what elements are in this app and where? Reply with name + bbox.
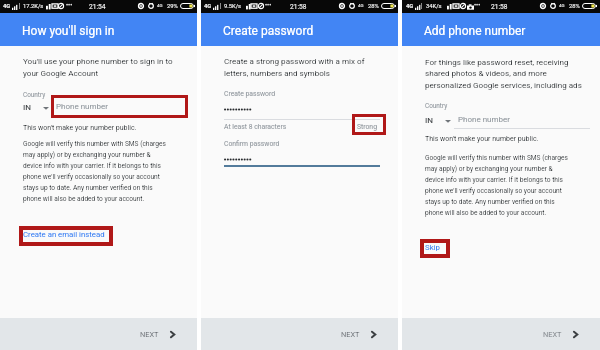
staticText: Phone number xyxy=(458,115,510,124)
staticText: ••• xyxy=(66,2,73,9)
staticText: This won't make your number public. xyxy=(23,124,137,132)
staticText: 4G xyxy=(559,3,565,8)
staticText: This won't make your number public. xyxy=(425,135,539,143)
staticText: NEXT xyxy=(140,330,159,339)
staticText: 28% xyxy=(368,3,379,10)
staticText: IN xyxy=(23,102,32,111)
staticText: At least 8 characters xyxy=(224,123,287,131)
button[interactable]: NEXT xyxy=(329,323,398,346)
staticText: 29% xyxy=(167,3,178,10)
staticText: ••• xyxy=(474,2,481,9)
staticText: How you'll sign in xyxy=(22,24,115,38)
staticText: 21:58 xyxy=(290,3,307,11)
staticText: Google will verify this number with SMS … xyxy=(425,154,568,216)
staticText: Country xyxy=(425,102,448,110)
staticText: 34K/s xyxy=(426,3,442,10)
staticText: 4G xyxy=(204,3,212,10)
staticText: Country xyxy=(23,91,46,99)
staticText: Confirm password xyxy=(224,140,280,148)
staticText: You'll use your phone number to sign in … xyxy=(23,56,173,78)
staticText: IN xyxy=(425,115,434,124)
staticText: NEXT xyxy=(543,330,562,339)
staticText: 4G xyxy=(406,3,414,10)
button[interactable]: NEXT xyxy=(128,323,197,346)
staticText: NEXT xyxy=(341,330,360,339)
button[interactable]: Create an email instead xyxy=(23,230,105,239)
staticText: 4G xyxy=(3,3,11,10)
staticText: Phone number xyxy=(56,102,108,111)
staticText: For things like password reset, receivin… xyxy=(425,57,582,90)
staticText: 28% xyxy=(569,3,580,10)
staticText: Create password xyxy=(223,24,314,38)
staticText: 21:54 xyxy=(89,3,106,11)
staticText: Create a strong password with a mix of l… xyxy=(224,56,365,78)
staticText: Strong xyxy=(357,123,377,131)
staticText: 9.5K/s xyxy=(224,3,242,10)
button[interactable]: NEXT xyxy=(531,323,600,346)
staticText: 21:58 xyxy=(491,3,508,11)
staticText: 4G xyxy=(157,3,163,8)
button[interactable]: Skip xyxy=(425,243,440,252)
staticText: Google will verify this number with SMS … xyxy=(23,140,166,202)
staticText: 17.2K/s xyxy=(23,3,44,10)
staticText: Add phone number xyxy=(424,24,526,38)
staticText: 4G xyxy=(358,3,364,8)
staticText: ••• xyxy=(265,2,272,9)
staticText: Create password xyxy=(224,90,276,98)
